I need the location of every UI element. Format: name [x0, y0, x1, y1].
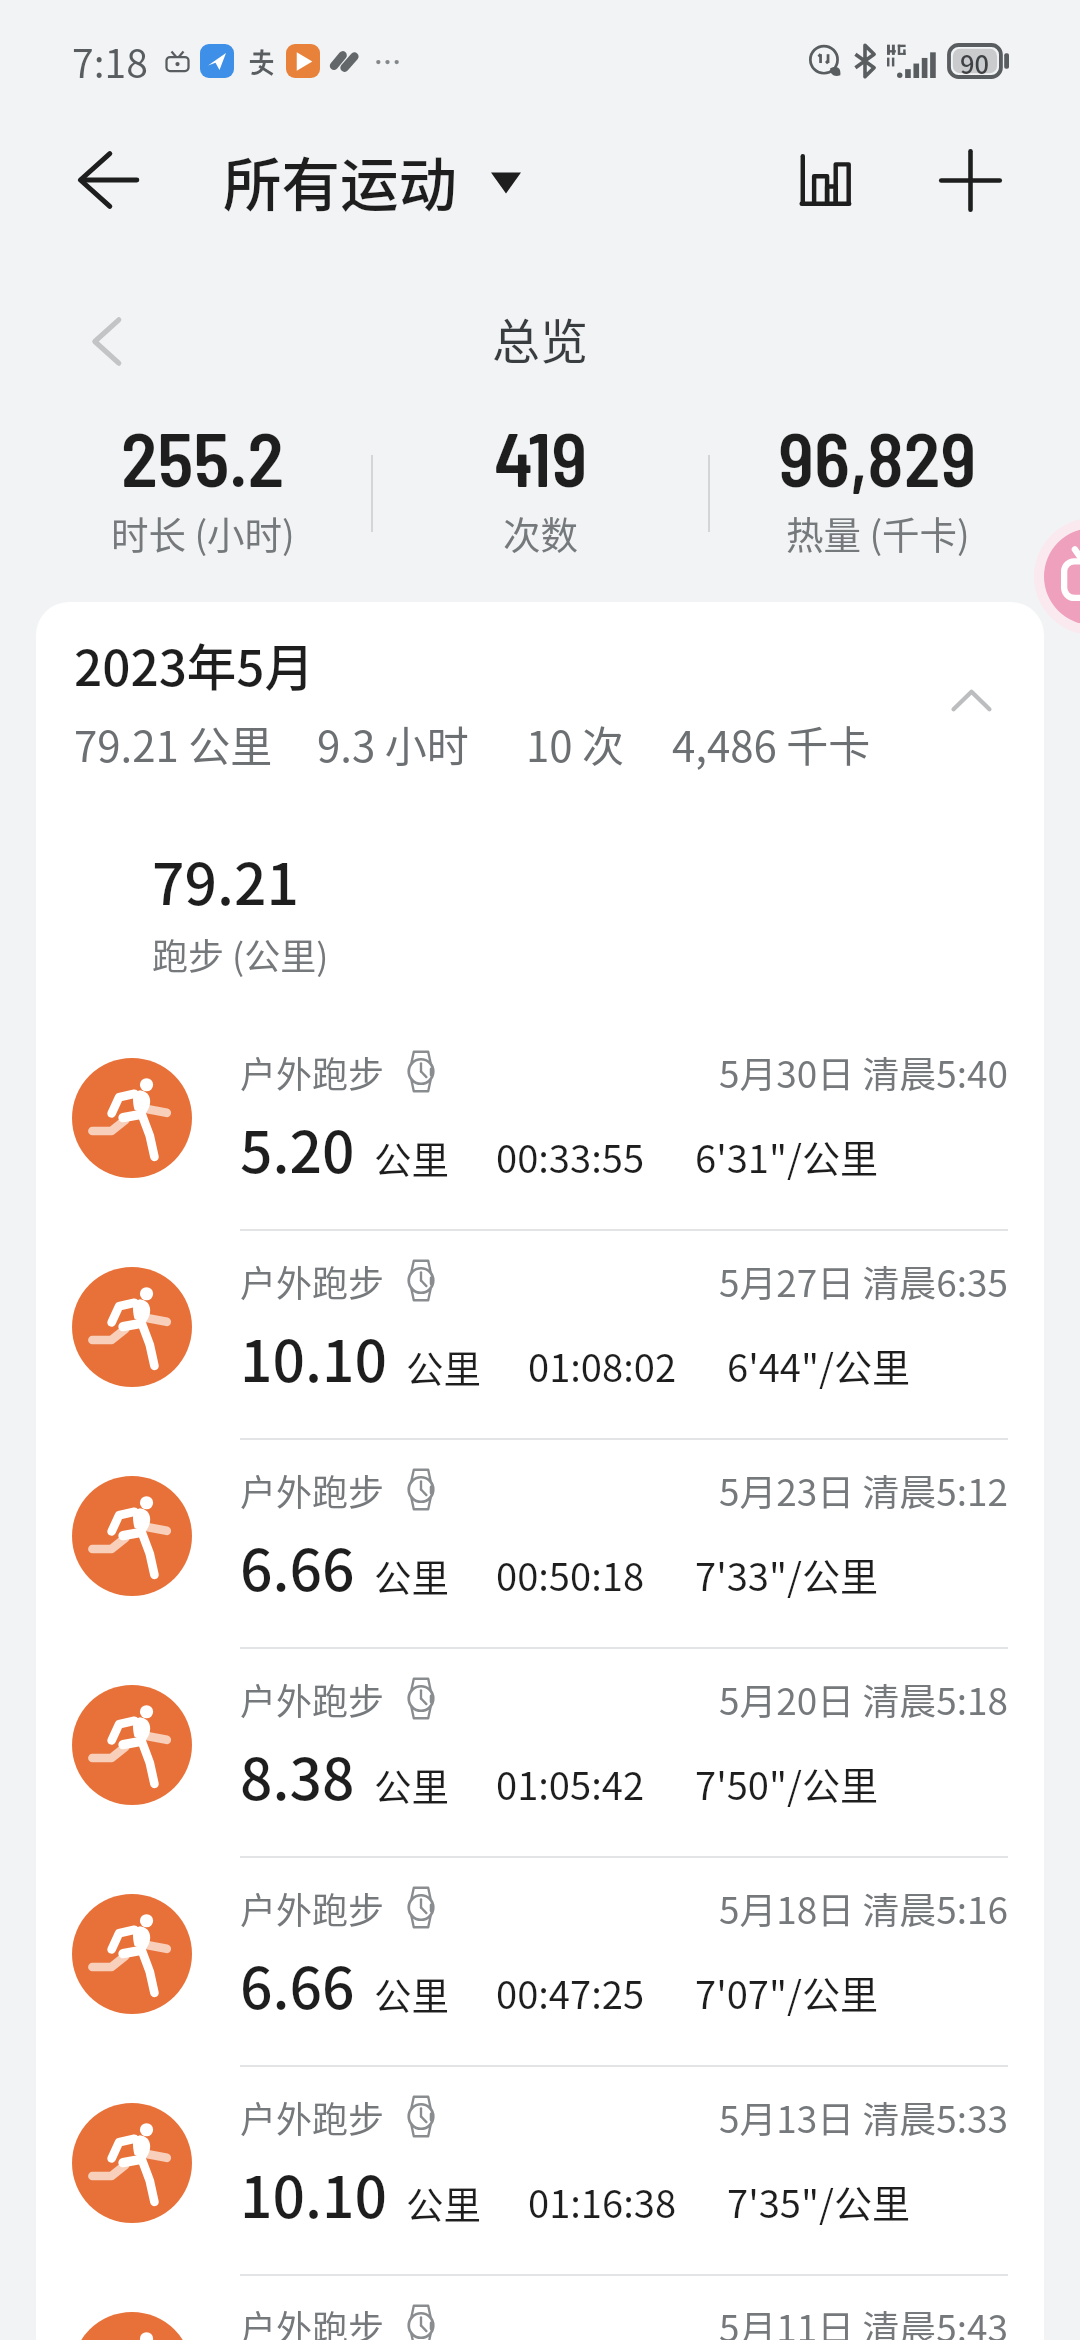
staticText: 公里	[406, 2175, 481, 2229]
staticText: 01:08:02	[528, 1338, 677, 1393]
staticText: 公里	[374, 1966, 449, 2020]
staticText: 公里	[406, 1339, 481, 1393]
staticText: 10 次	[526, 713, 625, 774]
staticText: 热量 (千卡)	[786, 505, 970, 559]
staticText: 5月11日 清晨5:43	[719, 2299, 1008, 2340]
staticText: 96,829	[778, 412, 977, 502]
staticText: 公里	[374, 1757, 449, 1811]
staticText: 所有运动	[223, 138, 458, 223]
staticText: 4,486 千卡	[672, 713, 871, 774]
staticText: 5月30日 清晨5:40	[719, 1045, 1008, 1098]
staticText: 公里	[374, 1130, 449, 1184]
staticText: 户外跑步	[240, 1882, 385, 1934]
staticText: 7'35"/公里	[727, 2174, 911, 2229]
staticText: 6.66	[240, 1525, 355, 1608]
staticText: 00:33:55	[496, 1129, 645, 1184]
staticText: 10.10	[240, 1316, 387, 1399]
staticText: 79.21	[152, 839, 299, 922]
button[interactable]: 户外跑步	[36, 1231, 1044, 1438]
staticText: 次数	[503, 505, 578, 559]
staticText: 跑步 (公里)	[152, 928, 329, 980]
staticText: 公里	[374, 1548, 449, 1602]
staticText: 时长 (小时)	[111, 505, 295, 559]
button[interactable]: 户外跑步	[36, 1858, 1044, 2065]
staticText: 5月13日 清晨5:33	[719, 2090, 1008, 2143]
staticText: 00:50:18	[496, 1547, 645, 1602]
button[interactable]: 户外跑步	[36, 1022, 1044, 1229]
staticText: 01:16:38	[528, 2174, 677, 2229]
button[interactable]: Previous period	[63, 296, 153, 386]
staticText: 5月27日 清晨6:35	[719, 1254, 1008, 1307]
staticText: 7'50"/公里	[695, 1756, 879, 1811]
button[interactable]: Collapse	[929, 658, 1013, 742]
staticText: 01:05:42	[496, 1756, 645, 1811]
staticText: 6.66	[240, 1943, 355, 2026]
staticText: 255.2	[121, 412, 285, 502]
button[interactable]: Add	[910, 120, 1030, 240]
staticText: 79.21 公里	[74, 713, 273, 774]
staticText: 7:18	[72, 33, 148, 89]
staticText: 00:47:25	[496, 1965, 645, 2020]
button[interactable]: Back	[48, 120, 168, 240]
button[interactable]: 户外跑步	[36, 2276, 1044, 2340]
staticText: 户外跑步	[240, 1046, 385, 1098]
staticText: 90	[960, 44, 990, 76]
button[interactable]: 户外跑步	[36, 1440, 1044, 1647]
staticText: 5月18日 清晨5:16	[719, 1881, 1008, 1934]
button[interactable]: 户外跑步	[36, 2067, 1044, 2274]
staticText: 419	[494, 412, 588, 502]
staticText: 9.3 小时	[317, 713, 469, 774]
staticText: 8.38	[240, 1734, 355, 1817]
staticText: 户外跑步	[240, 2091, 385, 2143]
staticText: 总览	[492, 303, 589, 373]
staticText: 7'33"/公里	[695, 1547, 879, 1602]
staticText: 10.10	[240, 2152, 387, 2235]
staticText: 户外跑步	[240, 2300, 385, 2340]
button[interactable]: 所有运动	[211, 123, 533, 238]
staticText: 5月23日 清晨5:12	[719, 1463, 1008, 1516]
button[interactable]: 户外跑步	[36, 1649, 1044, 1856]
staticText: 5月20日 清晨5:18	[719, 1672, 1008, 1725]
staticText: 户外跑步	[240, 1255, 385, 1307]
button[interactable]: Statistics	[766, 120, 886, 240]
staticText: 7'07"/公里	[695, 1965, 879, 2020]
button[interactable]: Floating assistant	[1034, 518, 1080, 635]
staticText: 户外跑步	[240, 1464, 385, 1516]
staticText: 户外跑步	[240, 1673, 385, 1725]
staticText: 5.20	[240, 1107, 355, 1190]
staticText: 2023年5月	[74, 629, 315, 701]
staticText: 6'44"/公里	[727, 1338, 911, 1393]
staticText: 6'31"/公里	[695, 1129, 879, 1184]
